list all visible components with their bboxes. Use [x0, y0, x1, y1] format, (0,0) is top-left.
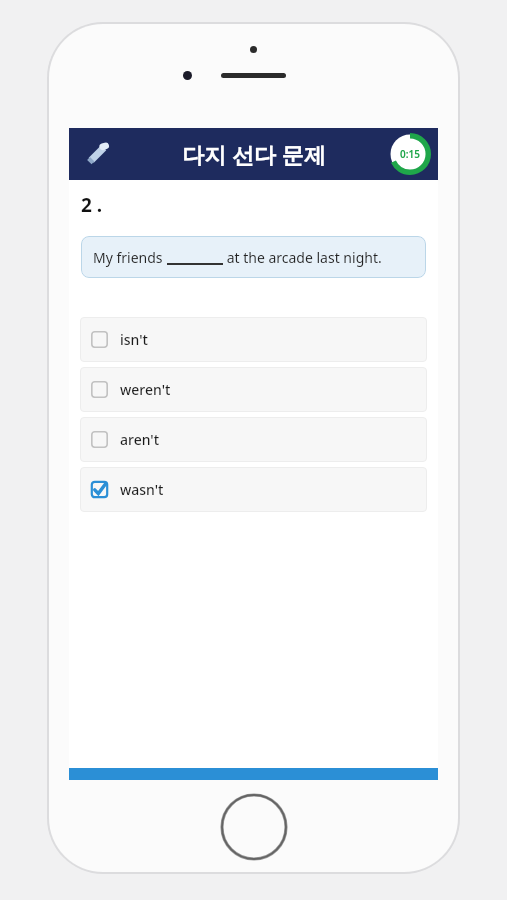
staticText: isn't	[120, 330, 148, 349]
staticText: aren't	[120, 430, 160, 449]
button[interactable]: weren't	[80, 367, 427, 412]
staticText: at the arcade last night.	[223, 248, 382, 267]
button[interactable]: wasn't	[80, 467, 427, 512]
staticText: 2 .	[81, 192, 103, 218]
button[interactable]: isn't	[80, 317, 427, 362]
staticText: wasn't	[120, 480, 164, 499]
button[interactable]: Edit	[79, 136, 115, 172]
staticText: weren't	[120, 380, 171, 399]
staticText: 다지 선다 문제	[182, 139, 326, 169]
staticText: My friends	[93, 248, 167, 267]
button[interactable]: Timer 0:15	[389, 133, 431, 175]
button[interactable]: My friends	[81, 236, 426, 278]
staticText: 0:15	[400, 147, 420, 161]
button[interactable]: aren't	[80, 417, 427, 462]
